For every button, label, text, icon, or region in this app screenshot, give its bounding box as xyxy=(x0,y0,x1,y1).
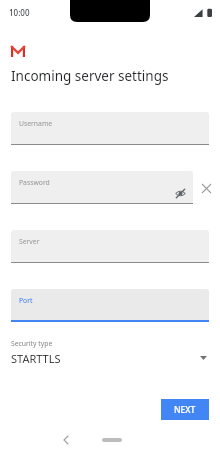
button[interactable]: Clear xyxy=(197,179,215,197)
button[interactable]: Port xyxy=(11,289,209,322)
button[interactable]: Back xyxy=(56,430,76,450)
button[interactable]: Show password xyxy=(173,186,187,200)
button[interactable]: Home xyxy=(102,438,122,442)
staticText: Username xyxy=(19,119,53,128)
button[interactable]: NEXT xyxy=(161,399,209,420)
staticText: Server xyxy=(19,237,40,246)
staticText: Security type xyxy=(11,339,53,348)
staticText: Incoming server settings xyxy=(11,67,169,85)
button[interactable]: Security type xyxy=(0,337,220,377)
staticText: Password xyxy=(19,178,50,187)
staticText: STARTTLS xyxy=(11,351,61,366)
staticText: Port xyxy=(19,296,33,305)
staticText: NEXT xyxy=(174,404,196,416)
button[interactable]: Password xyxy=(11,171,193,204)
button[interactable]: Server xyxy=(11,230,209,263)
staticText: 10:00 xyxy=(9,7,30,18)
button[interactable]: Username xyxy=(11,112,209,145)
